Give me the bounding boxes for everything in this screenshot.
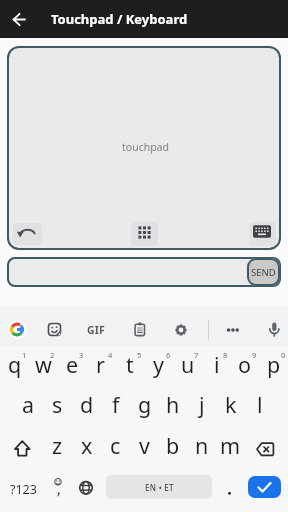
- staticText: g: [138, 390, 152, 419]
- staticText: r: [96, 350, 105, 379]
- staticText: d: [80, 390, 94, 419]
- button[interactable]: [167, 317, 193, 343]
- button[interactable]: [126, 317, 152, 343]
- button[interactable]: [46, 470, 70, 508]
- staticText: 1: [22, 350, 27, 360]
- staticText: 2: [50, 350, 55, 360]
- staticText: EN • ET: [145, 482, 174, 493]
- button[interactable]: [218, 317, 244, 343]
- button[interactable]: [4, 429, 40, 467]
- staticText: 8: [223, 350, 228, 360]
- button[interactable]: r: [86, 343, 115, 385]
- staticText: a: [22, 390, 35, 419]
- staticText: m: [220, 431, 241, 460]
- button[interactable]: i: [202, 343, 231, 385]
- button[interactable]: e: [58, 343, 87, 385]
- staticText: q: [8, 350, 22, 379]
- staticText: k: [225, 390, 237, 419]
- button[interactable]: u: [173, 343, 202, 385]
- staticText: w: [35, 350, 52, 379]
- button[interactable]: [7, 46, 281, 250]
- staticText: y: [153, 350, 164, 379]
- staticText: n: [195, 431, 209, 460]
- staticText: 0: [281, 350, 286, 360]
- staticText: v: [139, 431, 150, 460]
- button[interactable]: [131, 222, 158, 246]
- button[interactable]: k: [216, 383, 245, 425]
- button[interactable]: [73, 470, 97, 508]
- button[interactable]: [248, 429, 284, 467]
- staticText: ?123: [10, 481, 37, 498]
- button[interactable]: v: [130, 424, 159, 466]
- staticText: touchpad: [122, 140, 169, 154]
- button[interactable]: j: [187, 383, 216, 425]
- button[interactable]: d: [72, 383, 101, 425]
- button[interactable]: [7, 317, 33, 343]
- button[interactable]: g: [130, 383, 159, 425]
- button[interactable]: [249, 222, 276, 246]
- staticText: u: [181, 350, 195, 379]
- staticText: GIF: [87, 323, 106, 337]
- button[interactable]: a: [14, 383, 43, 425]
- button[interactable]: [248, 476, 281, 498]
- button[interactable]: o: [230, 343, 259, 385]
- button[interactable]: [13, 223, 42, 245]
- button[interactable]: q: [0, 343, 29, 385]
- staticText: t: [126, 350, 134, 379]
- staticText: 3: [79, 350, 84, 360]
- button[interactable]: [43, 317, 69, 343]
- button[interactable]: m: [216, 424, 245, 466]
- staticText: e: [66, 350, 79, 379]
- staticText: p: [267, 350, 281, 379]
- button[interactable]: b: [158, 424, 187, 466]
- button[interactable]: x: [72, 424, 101, 466]
- button[interactable]: [220, 470, 242, 508]
- button[interactable]: y: [144, 343, 173, 385]
- staticText: x: [81, 431, 93, 460]
- staticText: z: [52, 431, 63, 460]
- button[interactable]: h: [158, 383, 187, 425]
- button[interactable]: [7, 257, 281, 287]
- staticText: o: [238, 350, 252, 379]
- staticText: f: [112, 390, 120, 419]
- button[interactable]: [260, 317, 286, 343]
- staticText: 7: [194, 350, 199, 360]
- staticText: h: [166, 390, 180, 419]
- staticText: b: [166, 431, 180, 460]
- staticText: SEND: [251, 266, 276, 279]
- button[interactable]: w: [29, 343, 58, 385]
- button[interactable]: [106, 475, 212, 499]
- button[interactable]: SEND: [247, 258, 280, 286]
- button[interactable]: t: [115, 343, 144, 385]
- staticText: 6: [166, 350, 171, 360]
- staticText: 9: [252, 350, 257, 360]
- staticText: l: [257, 390, 263, 419]
- button[interactable]: c: [101, 424, 130, 466]
- button[interactable]: n: [187, 424, 216, 466]
- staticText: j: [199, 390, 205, 419]
- button[interactable]: [82, 317, 108, 343]
- staticText: 5: [137, 350, 142, 360]
- button[interactable]: f: [101, 383, 130, 425]
- button[interactable]: [0, 0, 38, 38]
- staticText: Touchpad / Keyboard: [51, 10, 188, 28]
- button[interactable]: [4, 470, 40, 508]
- staticText: s: [52, 390, 63, 419]
- button[interactable]: z: [43, 424, 72, 466]
- staticText: 4: [108, 350, 113, 360]
- button[interactable]: l: [245, 383, 274, 425]
- button[interactable]: p: [259, 343, 288, 385]
- staticText: c: [110, 431, 121, 460]
- button[interactable]: s: [43, 383, 72, 425]
- staticText: i: [214, 350, 220, 379]
